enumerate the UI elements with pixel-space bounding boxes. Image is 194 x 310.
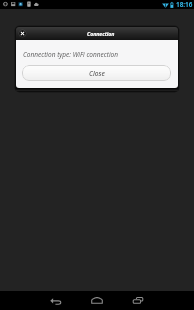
button[interactable]: Recent apps [123, 291, 153, 310]
button[interactable]: Close [22, 65, 171, 81]
staticText: Connection type: WiFi connection [23, 50, 118, 59]
staticText: 18:16 [176, 0, 193, 9]
button[interactable]: Back [41, 291, 71, 310]
button[interactable]: Close dialog [17, 28, 28, 39]
staticText: Close [89, 69, 105, 78]
staticText: Connection [87, 30, 115, 37]
button[interactable]: Home [82, 291, 112, 310]
